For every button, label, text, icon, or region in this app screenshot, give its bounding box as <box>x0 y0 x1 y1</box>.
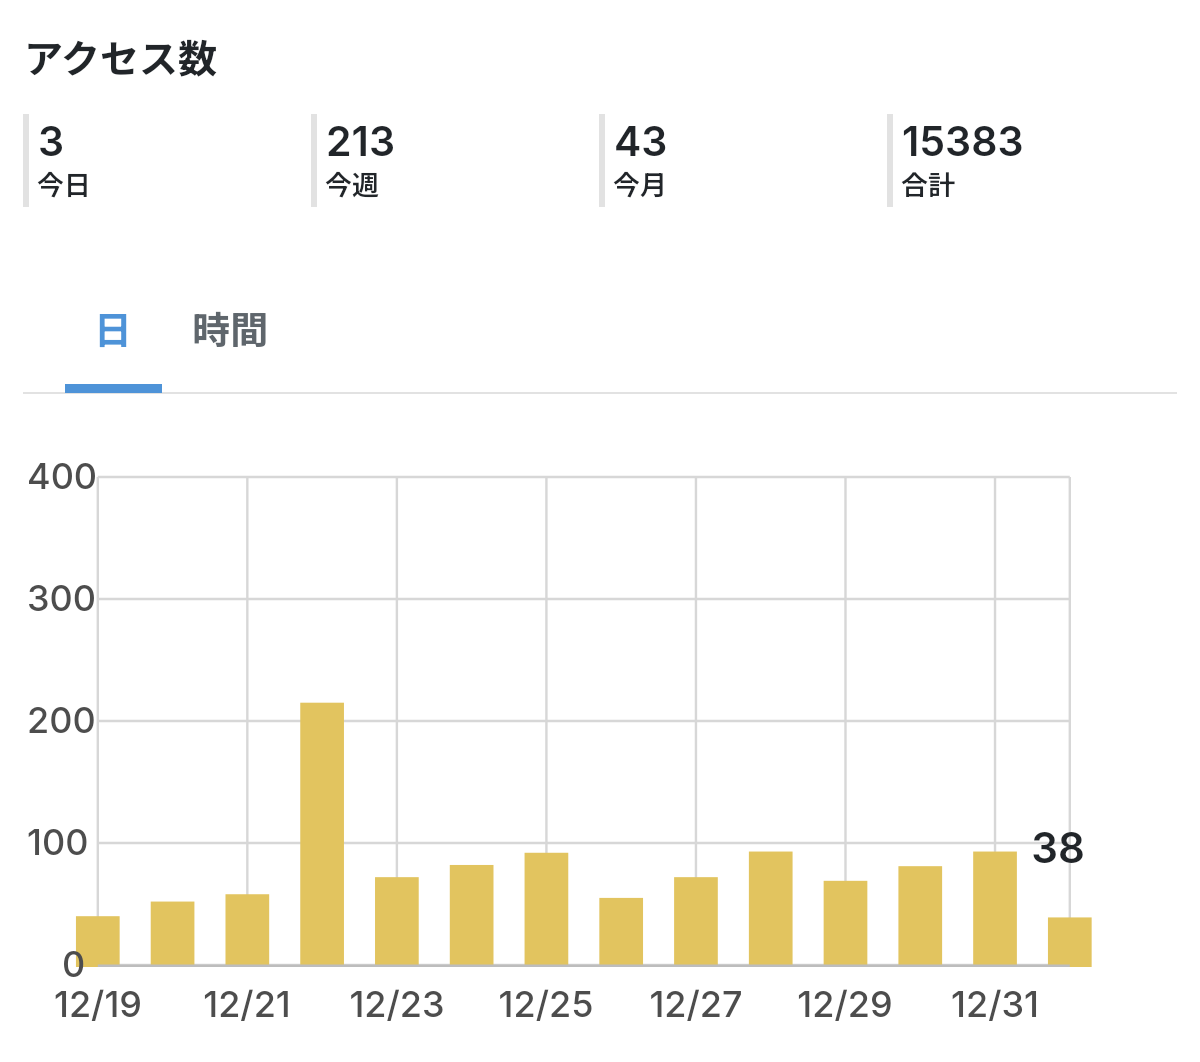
staticText: 12/23 <box>297 982 497 1026</box>
button[interactable]: 213 <box>311 114 599 207</box>
staticText: 12/31 <box>895 982 1095 1026</box>
staticText: 今週 <box>325 164 379 203</box>
button[interactable]: 15383 <box>887 114 1175 207</box>
button[interactable]: 3 <box>23 114 311 207</box>
staticText: 12/25 <box>446 982 646 1026</box>
staticText: 12/19 <box>0 982 198 1026</box>
staticText: 12/21 <box>147 982 347 1026</box>
staticText: 213 <box>326 116 395 166</box>
staticText: 38 <box>998 822 1118 873</box>
staticText: 15383 <box>902 116 1024 166</box>
staticText: 400 <box>27 454 98 498</box>
button[interactable]: 43 <box>599 114 887 207</box>
staticText: 300 <box>27 576 97 620</box>
staticText: 日 <box>94 300 133 355</box>
staticText: 3 <box>38 116 65 166</box>
staticText: 合計 <box>901 164 955 203</box>
staticText: 12/29 <box>745 982 945 1026</box>
button[interactable]: 日 <box>55 277 172 393</box>
staticText: 時間 <box>192 300 269 355</box>
staticText: 0 <box>62 942 86 986</box>
staticText: 200 <box>27 698 96 742</box>
staticText: 100 <box>27 820 89 864</box>
staticText: アクセス数 <box>24 28 218 84</box>
button[interactable]: 時間 <box>172 277 289 393</box>
staticText: 今日 <box>37 164 91 203</box>
staticText: 今月 <box>613 164 667 203</box>
staticText: 12/27 <box>596 982 796 1026</box>
staticText: 43 <box>614 116 668 166</box>
